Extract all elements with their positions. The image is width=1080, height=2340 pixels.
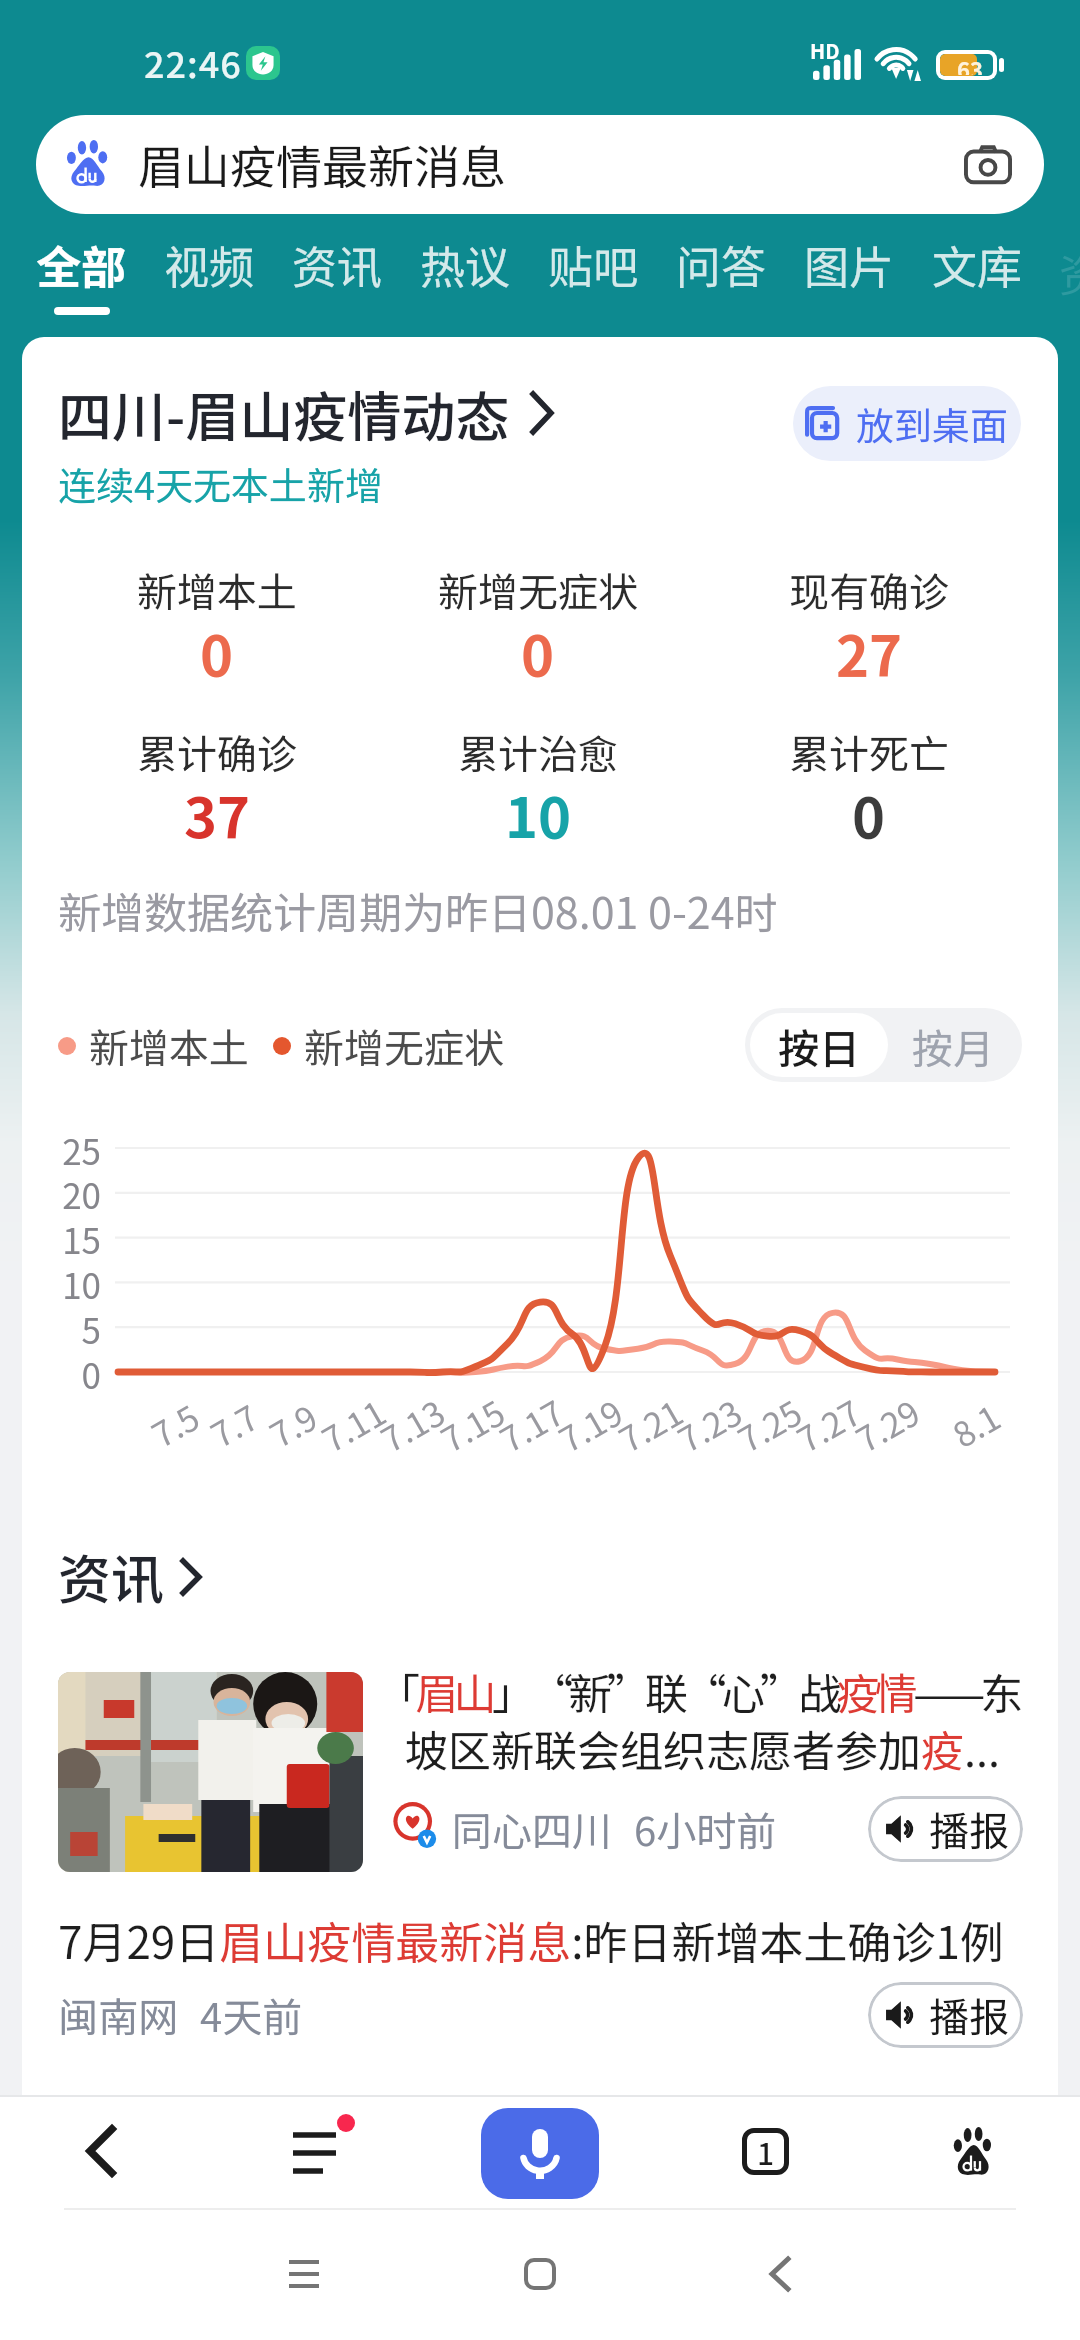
staticText: 0 — [40, 1348, 101, 1399]
staticText: 37 — [184, 773, 251, 854]
staticText: 新增本土 — [89, 1017, 249, 1075]
button[interactable]: 图片 — [785, 232, 913, 328]
staticText: HD — [810, 36, 840, 65]
staticText: 63 — [957, 54, 983, 75]
button[interactable] — [58, 1672, 363, 1872]
staticText: 7.11 — [312, 1386, 395, 1462]
staticText: 7.7 — [201, 1391, 267, 1458]
button[interactable]: 按日 — [750, 1013, 888, 1077]
staticText: 累计死亡 — [789, 723, 949, 781]
button[interactable]: 四川-眉山疫情动态 — [58, 374, 554, 452]
staticText: 资讯 — [292, 232, 383, 297]
staticText: 「眉山」“新”联“心”战疫情——东 — [377, 1660, 1019, 1722]
staticText: 文库 — [932, 232, 1023, 297]
staticText: 7.27 — [787, 1386, 870, 1462]
staticText: 放到桌面 — [856, 396, 1009, 451]
button[interactable]: 眉山疫情最新消息 — [36, 115, 1044, 214]
staticText: 7.21 — [609, 1386, 692, 1462]
staticText: 热议 — [420, 232, 511, 297]
staticText: 新增无症状 — [438, 561, 638, 619]
button[interactable]: Tabs — [712, 2098, 818, 2204]
staticText: 0 — [521, 611, 555, 692]
staticText: 累计治愈 — [458, 723, 618, 781]
button[interactable]: Baidu home — [923, 2100, 1029, 2206]
button[interactable]: 放到桌面 — [793, 386, 1021, 461]
staticText: 资讯 — [58, 1538, 164, 1615]
staticText: 四川-眉山疫情动态 — [58, 374, 510, 452]
staticText: 视频 — [164, 232, 255, 297]
button[interactable]: 贴吧 — [529, 232, 657, 328]
staticText: 资 — [1059, 240, 1080, 305]
button[interactable]: Menu — [286, 2113, 356, 2183]
button[interactable]: Home — [492, 2226, 588, 2322]
staticText: 7.23 — [668, 1386, 751, 1462]
staticText: 6小时前 — [634, 1800, 777, 1858]
staticText: 7.13 — [371, 1386, 454, 1462]
staticText: 4天前 — [200, 1986, 303, 2044]
staticText: 全部 — [36, 232, 127, 297]
button[interactable]: 资讯 — [273, 232, 401, 328]
staticText: 7.29 — [846, 1386, 929, 1462]
button[interactable]: 全部 — [17, 232, 145, 328]
staticText: 播报 — [929, 1986, 1009, 2044]
staticText: 现有确诊 — [789, 561, 949, 619]
button[interactable]: Recents — [256, 2226, 352, 2322]
staticText: 7.5 — [142, 1391, 208, 1458]
staticText: 新增数据统计周期为昨日08.01 0-24时 — [58, 879, 778, 941]
staticText: 27 — [836, 611, 903, 692]
staticText: 0 — [852, 773, 886, 854]
staticText: 7.19 — [549, 1386, 632, 1462]
staticText: 眉山疫情最新消息 — [138, 131, 946, 198]
staticText: 5 — [40, 1303, 101, 1354]
staticText: 连续4天无本土新增 — [58, 456, 384, 511]
staticText: 新增无症状 — [304, 1017, 504, 1075]
button[interactable]: Voice search — [481, 2108, 599, 2199]
staticText: 新增本土 — [137, 561, 297, 619]
button[interactable]: Camera search — [946, 123, 1030, 207]
staticText: 问答 — [676, 232, 767, 297]
button[interactable]: 文库 — [913, 232, 1041, 328]
staticText: 同心四川 — [452, 1800, 612, 1858]
staticText: 8.1 — [943, 1391, 1009, 1458]
button[interactable]: 播报 — [868, 1982, 1023, 2048]
button[interactable]: Back — [732, 2226, 828, 2322]
staticText: 7.9 — [260, 1391, 326, 1458]
staticText: 7.15 — [431, 1386, 514, 1462]
staticText: 按日 — [778, 1016, 860, 1075]
staticText: 0 — [200, 611, 234, 692]
button[interactable]: 资讯 — [58, 1538, 202, 1615]
button[interactable]: Back — [46, 2096, 156, 2206]
staticText: 贴吧 — [548, 232, 639, 297]
staticText: 25 — [40, 1124, 101, 1175]
staticText: 1 — [757, 2130, 775, 2173]
button[interactable]: 热议 — [401, 232, 529, 328]
button[interactable]: 视频 — [145, 232, 273, 328]
staticText: 10 — [505, 773, 572, 854]
staticText: 7.25 — [728, 1386, 811, 1462]
staticText: 累计确诊 — [137, 723, 297, 781]
staticText: 播报 — [929, 1800, 1009, 1858]
staticText: 闽南网 — [58, 1986, 178, 2044]
staticText: 7月29日眉山疫情最新消息:昨日新增本土确诊1例 — [58, 1908, 1004, 1972]
staticText: 15 — [40, 1213, 101, 1264]
staticText: 22:46 — [144, 36, 242, 88]
staticText: 图片 — [804, 232, 895, 297]
staticText: 坡区新联会组织志愿者参加疫... — [405, 1717, 1000, 1779]
staticText: 20 — [40, 1168, 101, 1219]
staticText: 7.17 — [490, 1386, 573, 1462]
button[interactable]: 问答 — [657, 232, 785, 328]
button[interactable]: 播报 — [868, 1796, 1023, 1862]
staticText: 10 — [40, 1258, 101, 1309]
button[interactable]: 按月 — [888, 1013, 1017, 1077]
staticText: 按月 — [912, 1016, 994, 1075]
